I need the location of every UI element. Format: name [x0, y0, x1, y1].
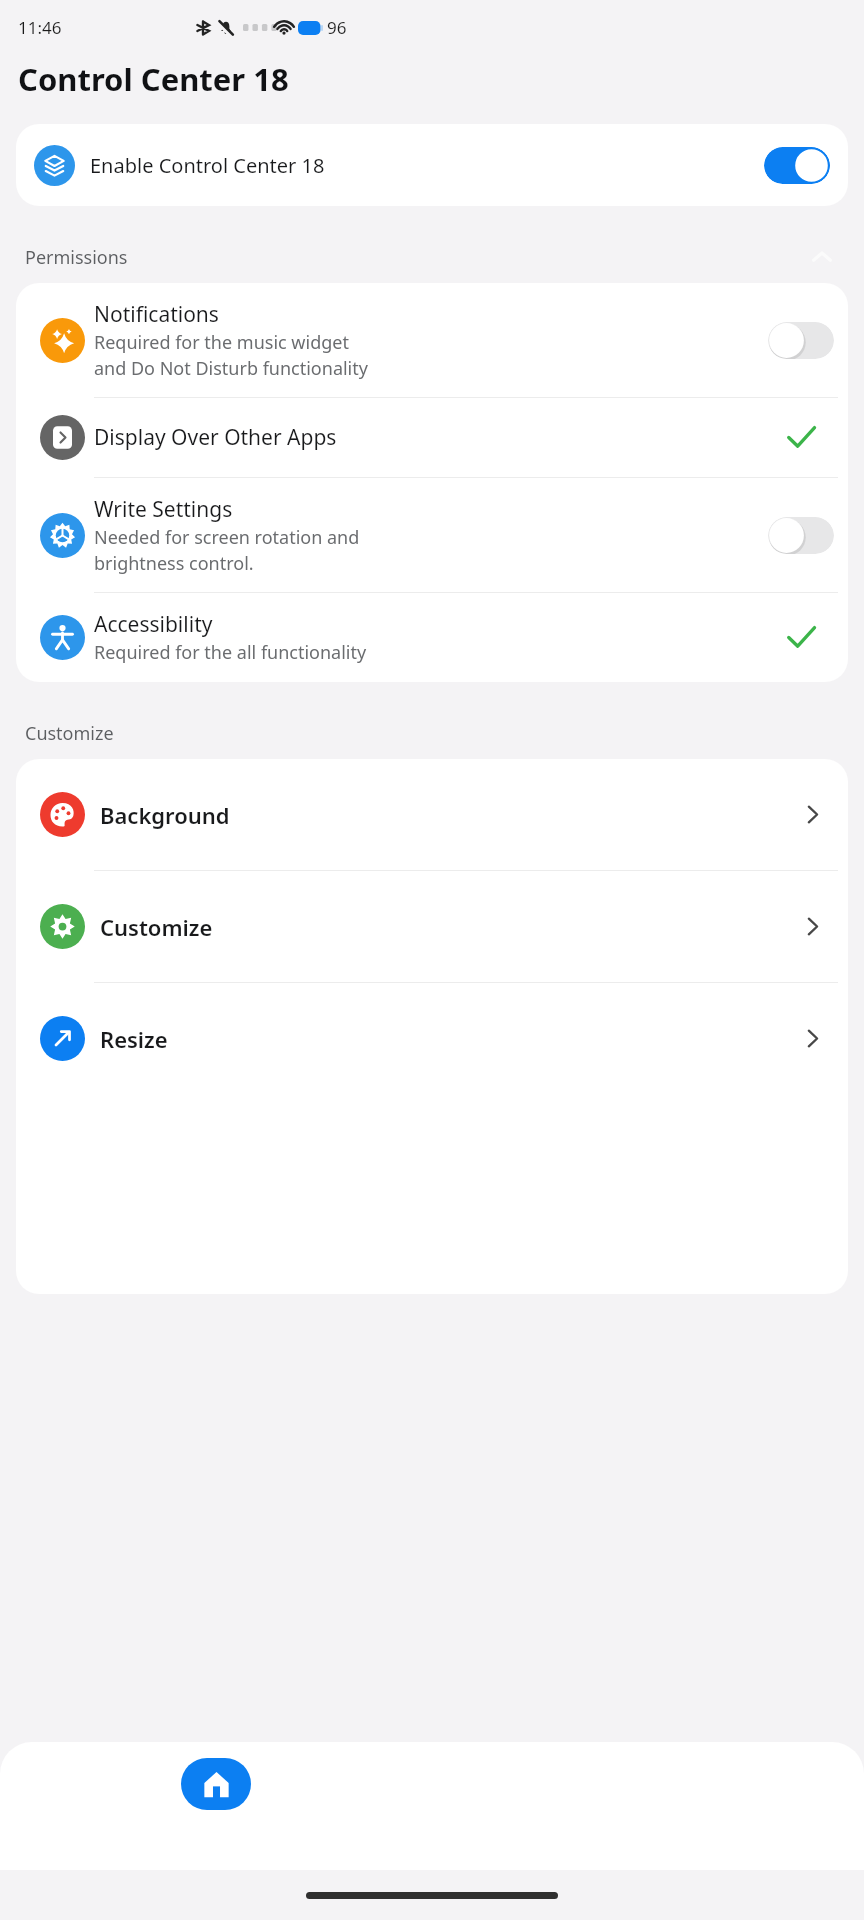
button[interactable]: Toggle permission	[768, 517, 834, 554]
button[interactable]: Notifications	[16, 283, 848, 397]
staticText: 11:46	[18, 16, 62, 39]
button[interactable]: Resize	[16, 983, 848, 1094]
staticText: 96	[327, 16, 347, 39]
staticText: Control Center 18	[18, 58, 289, 100]
button[interactable]: Write Settings	[16, 478, 848, 592]
button[interactable]: Enable Control Center 18	[764, 147, 830, 184]
button[interactable]: Accessibility	[16, 593, 848, 682]
staticText: Customize	[25, 721, 114, 746]
button[interactable]: Background	[16, 759, 848, 870]
staticText: Required for the all functionality	[94, 640, 367, 665]
staticText: Background	[100, 800, 230, 830]
staticText: Display Over Other Apps	[94, 423, 337, 452]
staticText: Resize	[100, 1024, 168, 1054]
staticText: Required for the music widget and Do Not…	[94, 330, 368, 380]
staticText: Accessibility	[94, 610, 213, 639]
staticText: Write Settings	[94, 495, 233, 524]
staticText: Notifications	[94, 300, 219, 329]
button[interactable]: Customize	[16, 871, 848, 982]
staticText: Customize	[100, 912, 213, 942]
button[interactable]: Home	[181, 1758, 251, 1810]
button[interactable]: Enable Control Center 18	[16, 124, 848, 206]
staticText: Permissions	[25, 245, 128, 270]
button[interactable]: Display Over Other Apps	[16, 398, 848, 477]
button[interactable]: Toggle permission	[768, 322, 834, 359]
staticText: Needed for screen rotation and brightnes…	[94, 525, 360, 575]
staticText: Enable Control Center 18	[90, 152, 325, 179]
